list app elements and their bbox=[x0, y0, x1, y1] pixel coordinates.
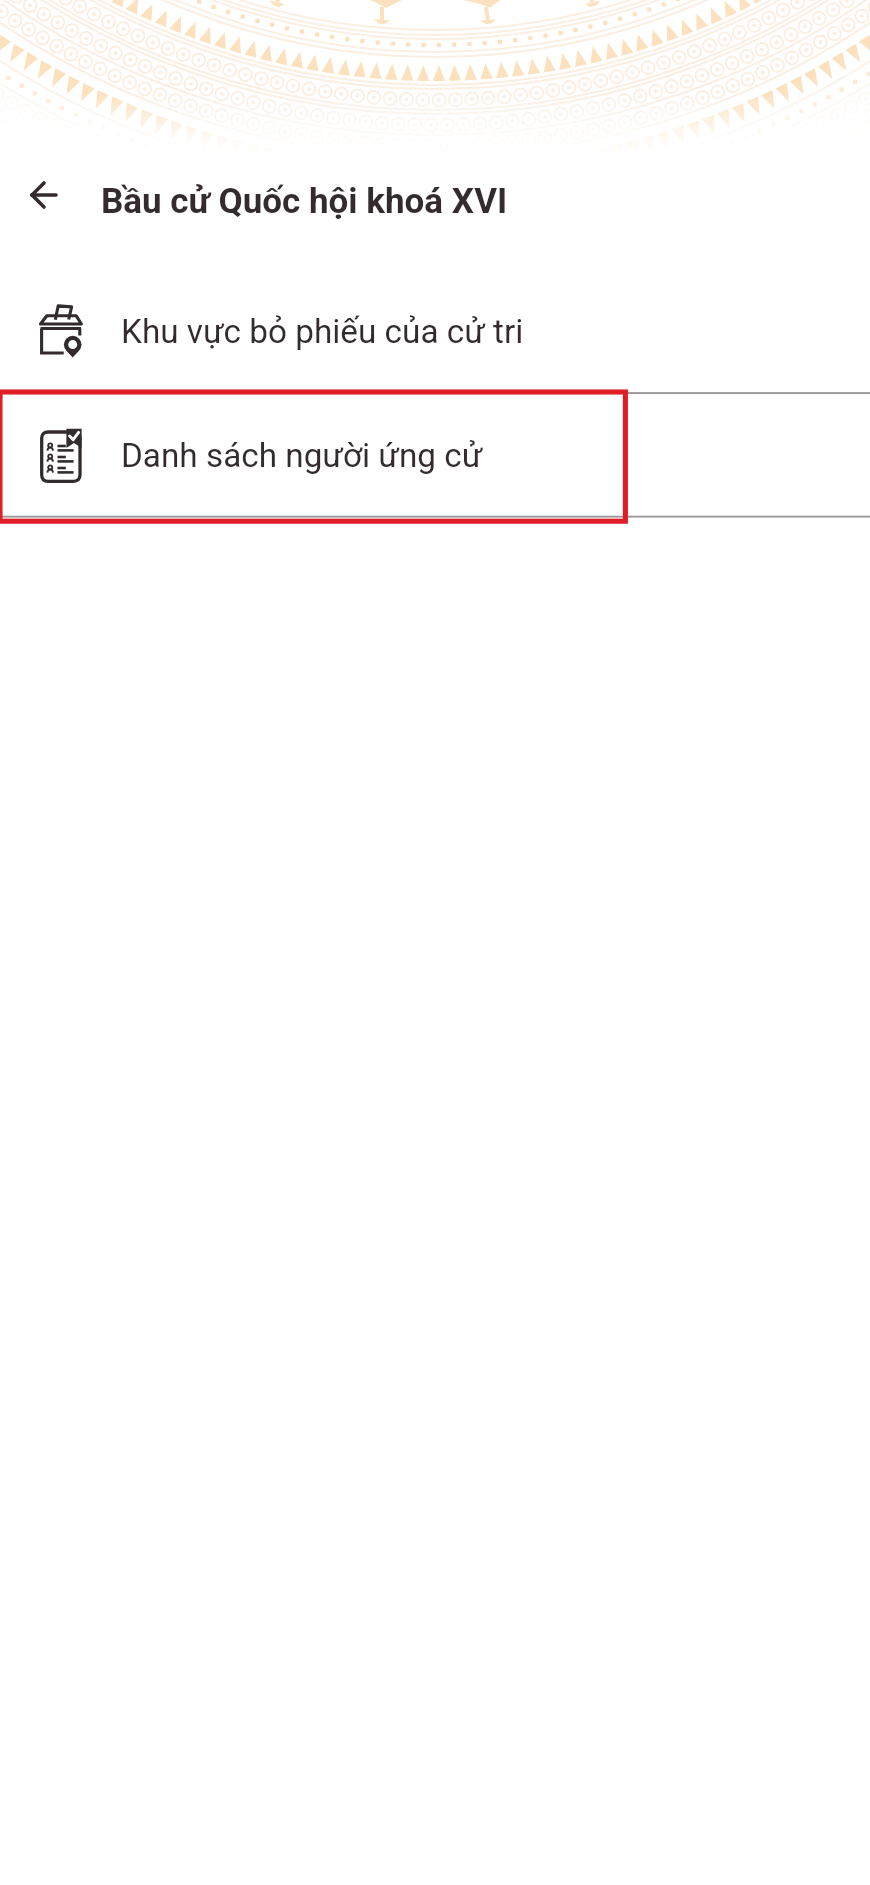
staticText: Khu vực bỏ phiếu của cử tri bbox=[121, 312, 524, 351]
button[interactable]: Danh sách người ứng cử bbox=[0, 393, 870, 517]
button[interactable]: Khu vực bỏ phiếu của cử tri bbox=[0, 269, 870, 393]
button[interactable]: Back bbox=[13, 164, 75, 226]
staticText: Danh sách người ứng cử bbox=[121, 436, 483, 475]
staticText: Bầu cử Quốc hội khoá XVI bbox=[101, 181, 508, 222]
